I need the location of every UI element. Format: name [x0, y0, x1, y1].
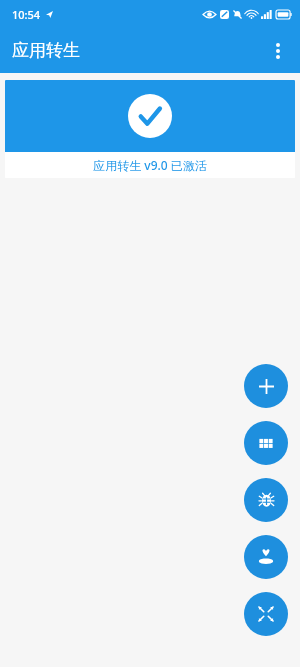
- button[interactable]: Fullscreen: [244, 592, 288, 636]
- button[interactable]: 应用转生 v9.0 已激活: [5, 80, 295, 178]
- button[interactable]: Add: [244, 364, 288, 408]
- button[interactable]: More options: [260, 33, 296, 69]
- button[interactable]: Apps: [244, 421, 288, 465]
- staticText: 10:54: [12, 7, 41, 22]
- button[interactable]: Donate: [244, 535, 288, 579]
- button[interactable]: Debug: [244, 478, 288, 522]
- staticText: 应用转生 v9.0 已激活: [93, 157, 207, 173]
- staticText: 应用转生: [12, 40, 80, 61]
